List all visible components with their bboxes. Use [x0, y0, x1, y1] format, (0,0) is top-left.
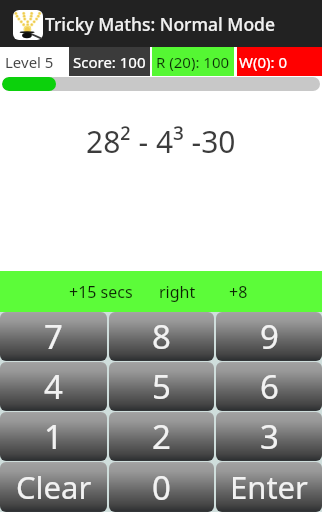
staticText: 6 [260, 364, 279, 409]
staticText: 28² - 4³ -30 [86, 121, 236, 162]
button[interactable]: Enter [216, 462, 322, 512]
staticText: 0 [152, 465, 171, 510]
button[interactable]: 8 [109, 312, 214, 361]
staticText: 1 [44, 414, 63, 459]
staticText: 5 [152, 364, 171, 409]
staticText: R (20): 100 [156, 52, 230, 72]
button[interactable]: 6 [216, 362, 322, 411]
staticText: Enter [230, 466, 308, 508]
staticText: 9 [260, 314, 279, 359]
button[interactable]: 4 [0, 362, 107, 411]
staticText: +8 [229, 281, 248, 303]
staticText: Score: 100 [73, 52, 146, 72]
button[interactable]: 1 [0, 412, 107, 461]
staticText: 3 [260, 414, 279, 459]
staticText: 8 [152, 314, 171, 359]
button[interactable]: 7 [0, 312, 107, 361]
staticText: Tricky Maths: Normal Mode [45, 12, 276, 36]
staticText: Level 5 [5, 52, 54, 72]
staticText: 7 [44, 314, 63, 359]
button[interactable]: 5 [109, 362, 214, 411]
staticText: 4 [44, 364, 63, 409]
button[interactable]: 3 [216, 412, 322, 461]
staticText: Clear [16, 466, 92, 508]
button[interactable]: 0 [109, 462, 214, 512]
button[interactable]: 9 [216, 312, 322, 361]
staticText: +15 secs [69, 281, 133, 303]
staticText: W(0): 0 [239, 52, 288, 72]
button[interactable]: Clear [0, 462, 107, 512]
button[interactable]: 2 [109, 412, 214, 461]
staticText: 2 [152, 414, 171, 459]
staticText: right [159, 281, 196, 303]
